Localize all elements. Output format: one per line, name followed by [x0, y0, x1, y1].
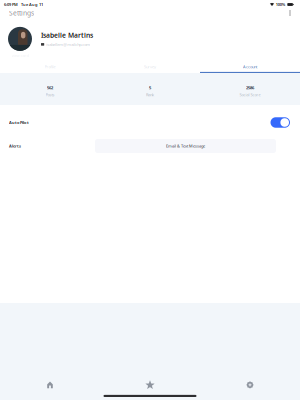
staticText: 5 [149, 85, 151, 90]
staticText: Alerts [9, 143, 21, 149]
staticText: Settings [9, 9, 34, 17]
staticText: 100% [276, 2, 286, 7]
staticText: 2586 [246, 85, 254, 90]
staticText: view card [11, 53, 28, 58]
staticText: Account [243, 64, 257, 69]
button[interactable]: Favorites [100, 376, 200, 394]
staticText: 6:09 PM Tue Aug 11 [4, 2, 43, 7]
staticText: Survey [144, 64, 156, 69]
staticText: Isabelle Martins [41, 31, 93, 40]
staticText: Email & Text Message [166, 143, 205, 149]
button[interactable]: Home [0, 376, 100, 394]
button[interactable]: Email & Text Message [95, 139, 276, 153]
button[interactable]: Settings [200, 376, 300, 394]
staticText: AutoPilot [9, 120, 29, 125]
staticText: Rank [146, 92, 154, 97]
staticText: Posts [45, 92, 54, 97]
staticText: 562 [47, 85, 53, 90]
button[interactable]: Account [200, 60, 300, 73]
button[interactable]: More options [285, 8, 295, 18]
staticText: Social Score [239, 92, 260, 97]
staticText: isabellem@mailchp.com [46, 42, 90, 47]
staticText: Profile [44, 64, 55, 69]
button[interactable]: AutoPilot [270, 117, 290, 128]
